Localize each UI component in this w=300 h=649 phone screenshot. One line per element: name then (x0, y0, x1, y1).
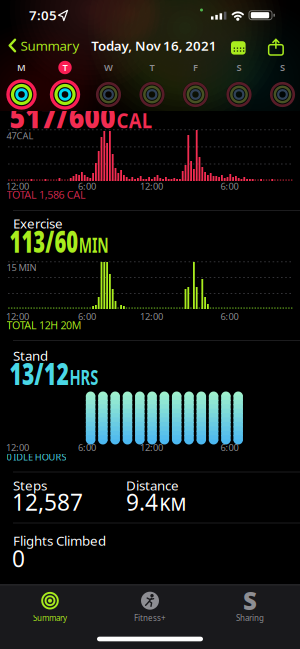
button[interactable]: Thursday (135, 62, 169, 112)
staticText: CAL (132, 106, 173, 134)
staticText: T (149, 61, 154, 74)
staticText: 12:00 (6, 441, 29, 454)
staticText: W (104, 61, 113, 74)
staticText: S (236, 61, 241, 74)
staticText: F (193, 61, 198, 74)
staticText: Exercise (13, 214, 63, 232)
staticText: 6:00 (220, 310, 238, 323)
button[interactable]: Summary (8, 37, 79, 54)
staticText: 517/600 (9, 96, 131, 137)
staticText: 12:00 (140, 310, 163, 323)
button[interactable]: Fitness+ (100, 586, 199, 628)
staticText: 47CAL (6, 129, 33, 142)
staticText: 7:05 (29, 6, 57, 24)
staticText: 13/12 (9, 353, 95, 393)
button[interactable]: Friday (178, 62, 212, 112)
staticText: 6:00 (220, 180, 238, 192)
staticText: Distance (126, 476, 179, 494)
staticText: Flights Climbed (13, 532, 106, 549)
button[interactable]: Wednesday (91, 62, 125, 112)
staticText: HRS (96, 362, 138, 391)
staticText: Stand (13, 347, 48, 364)
staticText: T (62, 61, 67, 74)
staticText: 15 MIN (6, 261, 36, 274)
staticText: 6:00 (220, 441, 238, 454)
button[interactable]: Monday (4, 62, 38, 112)
button[interactable]: Share (267, 38, 284, 56)
staticText: 12:00 (140, 180, 163, 192)
staticText: 12:00 (6, 180, 29, 192)
staticText: 12:00 (6, 310, 29, 323)
staticText: M (17, 61, 26, 74)
staticText: 0 IDLE HOURS (6, 451, 66, 463)
staticText: S (280, 61, 285, 74)
staticText: 6:00 (78, 310, 96, 323)
staticText: 0 (12, 543, 25, 573)
staticText: Sharing (236, 613, 264, 623)
button[interactable]: Calendar (231, 41, 246, 55)
staticText: S (243, 585, 257, 617)
staticText: Summary (33, 613, 67, 623)
staticText: 12:00 (140, 441, 163, 454)
button[interactable]: Summary (0, 586, 99, 628)
staticText: KM (159, 493, 186, 516)
button[interactable]: Sunday (265, 62, 299, 112)
button[interactable]: Tuesday (48, 62, 82, 112)
staticText: 6:00 (78, 441, 96, 454)
button[interactable]: Saturday (222, 62, 256, 112)
staticText: Today, Nov 16, 2021 (91, 37, 217, 54)
staticText: 113/60 (9, 220, 113, 261)
staticText: Fitness+ (134, 613, 166, 623)
staticText: TOTAL 12H 20M (6, 318, 82, 332)
staticText: TOTAL 1,586 CAL (6, 187, 86, 202)
staticText: 12,587 (12, 487, 83, 517)
staticText: 6:00 (78, 180, 96, 192)
staticText: Summary (20, 37, 79, 54)
staticText: Steps (13, 476, 47, 494)
staticText: 9.4 (126, 487, 158, 517)
button[interactable]: S (200, 586, 299, 628)
